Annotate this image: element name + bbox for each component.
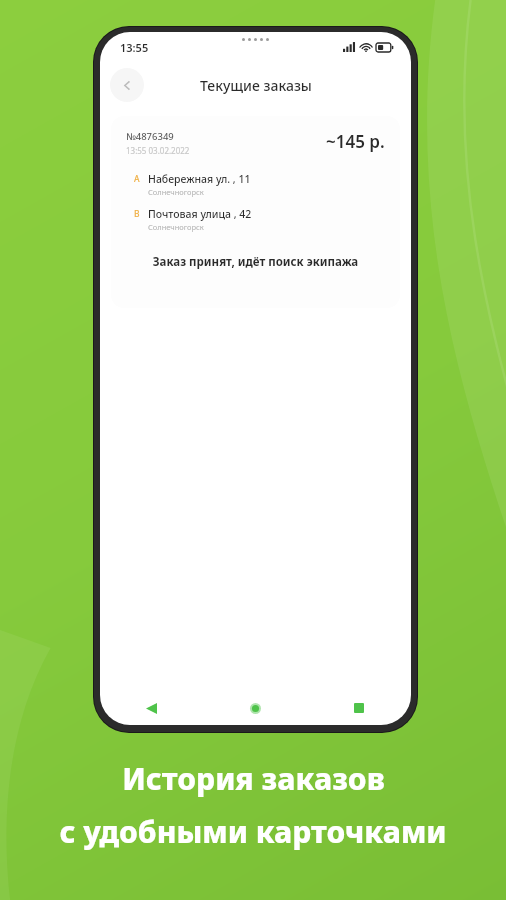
- staticText: A: [134, 173, 140, 185]
- staticText: 13:55 03.02.2022: [126, 145, 190, 156]
- button[interactable]: №4876349: [111, 116, 400, 308]
- staticText: Текущие заказы: [200, 76, 312, 95]
- staticText: Набережная ул. , 11: [148, 172, 251, 186]
- staticText: Солнечногорск: [148, 187, 204, 197]
- staticText: Солнечногорск: [148, 222, 204, 232]
- staticText: Почтовая улица , 42: [148, 207, 252, 221]
- staticText: B: [134, 208, 140, 220]
- staticText: 13:55: [120, 40, 149, 55]
- staticText: №4876349: [126, 130, 174, 143]
- staticText: ~145 р.: [326, 130, 385, 153]
- staticText: с удобными карточками: [59, 811, 447, 852]
- button[interactable]: Недавние приложения: [307, 691, 411, 725]
- button[interactable]: Назад: [110, 68, 144, 102]
- staticText: Заказ принят, идёт поиск экипажа: [126, 254, 385, 270]
- button[interactable]: Назад: [100, 691, 203, 725]
- button[interactable]: Главная: [203, 691, 307, 725]
- staticText: История заказов: [122, 758, 385, 799]
